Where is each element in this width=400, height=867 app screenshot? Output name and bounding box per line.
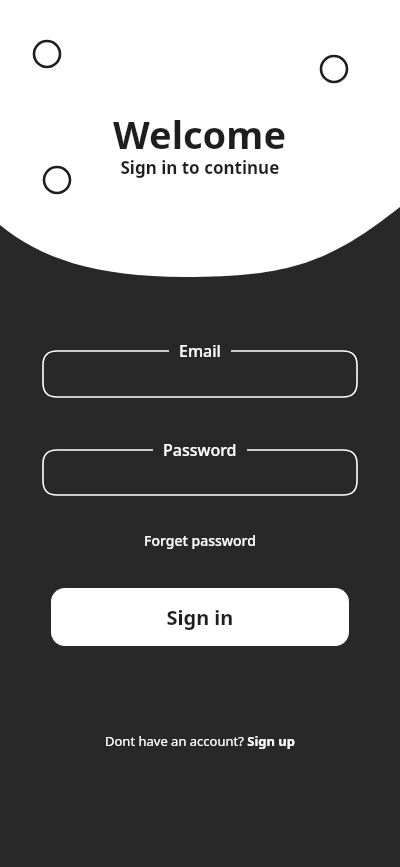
button[interactable]: Email: [43, 340, 357, 397]
button[interactable]: Password: [43, 439, 357, 495]
button[interactable]: [128, 528, 272, 552]
button[interactable]: [70, 728, 330, 754]
button[interactable]: [51, 588, 349, 646]
